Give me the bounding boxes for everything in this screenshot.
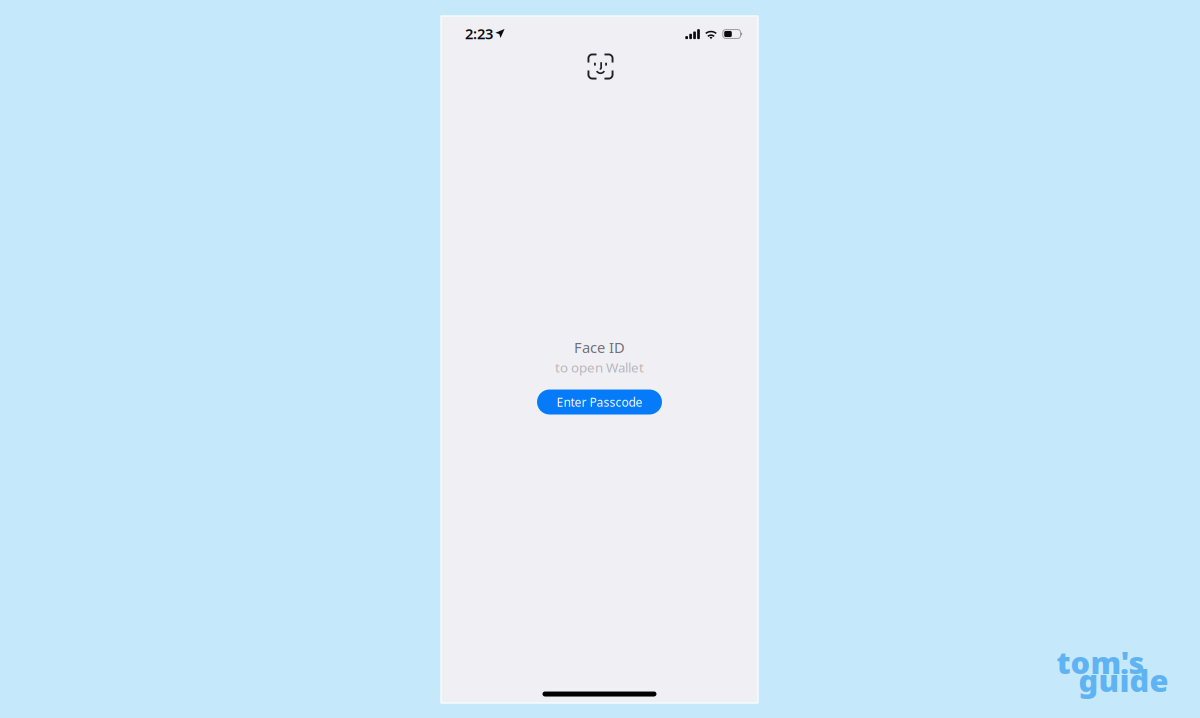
staticText: tom's bbox=[1056, 642, 1144, 682]
staticText: Face ID bbox=[574, 337, 625, 357]
staticText: Enter Passcode bbox=[556, 394, 642, 410]
staticText: guide bbox=[1078, 660, 1168, 700]
button[interactable]: Enter Passcode bbox=[537, 389, 662, 414]
staticText: to open Wallet bbox=[555, 358, 644, 376]
staticText: 2:23 bbox=[465, 24, 493, 43]
